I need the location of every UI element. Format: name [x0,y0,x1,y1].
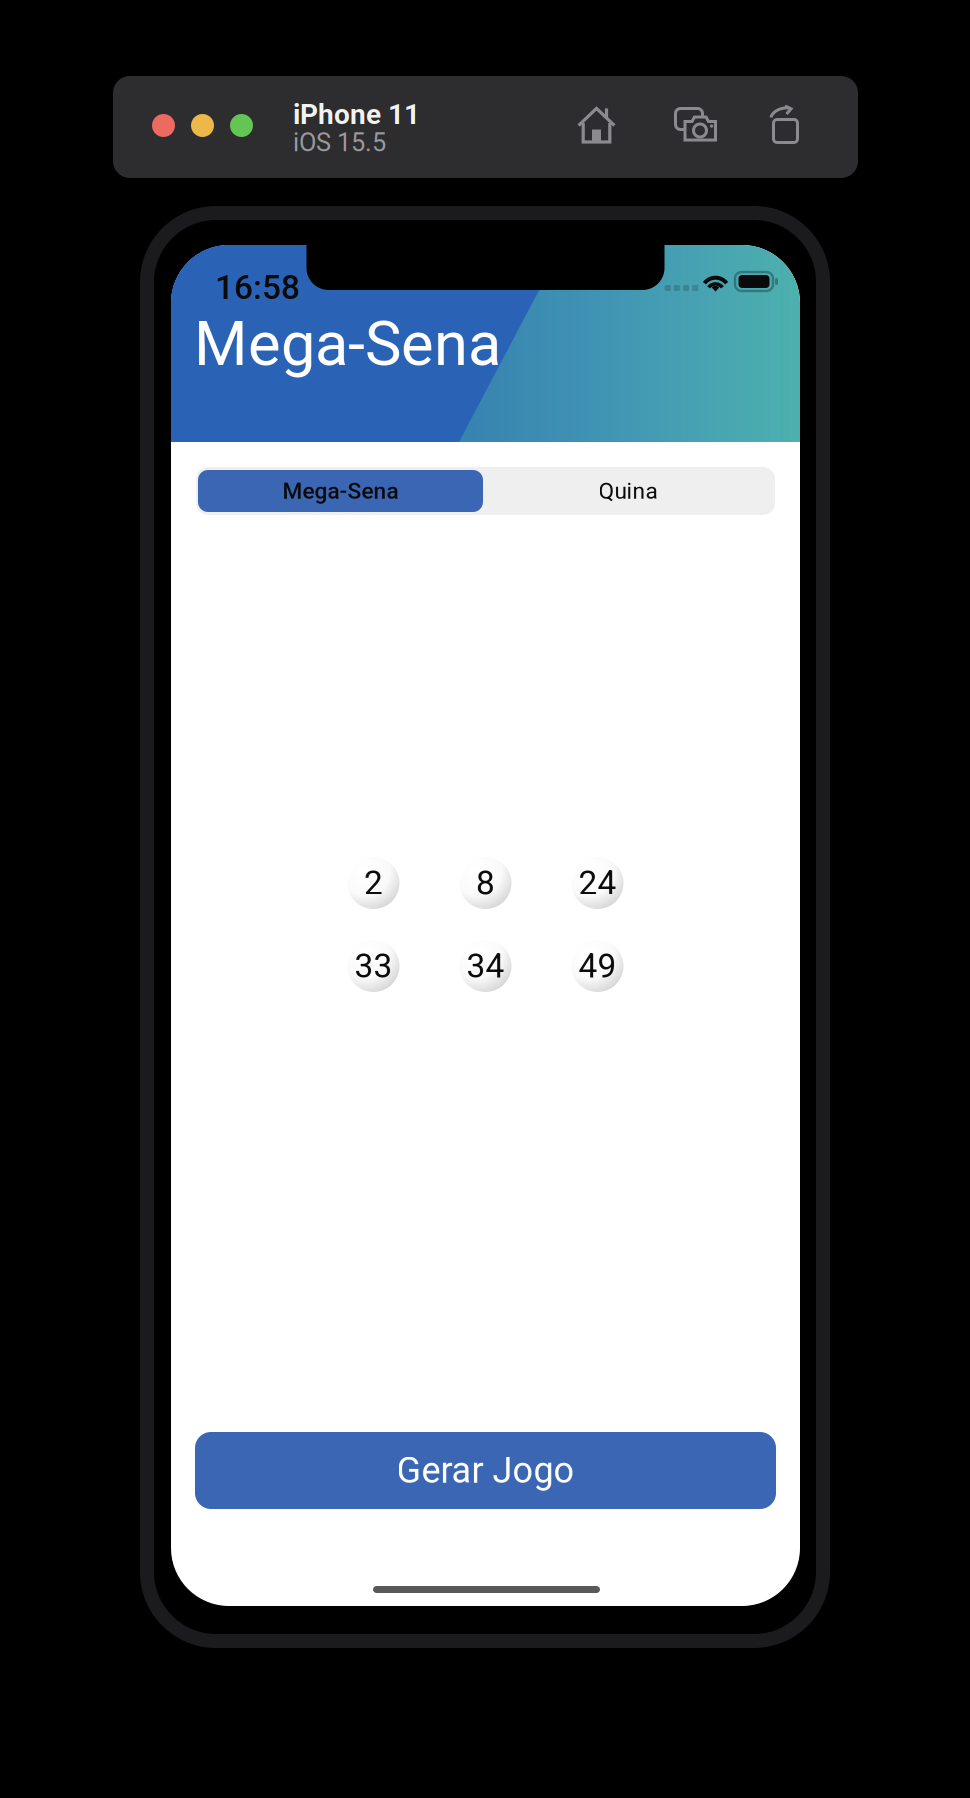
staticText: Mega-Sena [282,478,398,504]
staticText: Quina [598,478,657,504]
button[interactable]: Quina [483,470,773,512]
button[interactable]: Gerar Jogo [195,1432,776,1509]
staticText: 2 [364,863,383,903]
staticText: iPhone 11 [293,98,420,131]
button[interactable]: Rotate device [769,106,802,144]
staticText: iOS 15.5 [293,128,386,157]
staticText: 34 [466,946,504,986]
staticText: 33 [354,946,392,986]
staticText: Mega-Sena [194,308,501,380]
staticText: 8 [476,863,495,903]
button[interactable]: Screenshot [674,107,719,143]
button[interactable]: Home [577,106,616,144]
staticText: 24 [578,863,616,903]
button[interactable]: Mega-Sena [198,470,483,512]
staticText: 16:58 [215,268,300,307]
staticText: Gerar Jogo [396,1449,574,1492]
staticText: 49 [578,946,616,986]
